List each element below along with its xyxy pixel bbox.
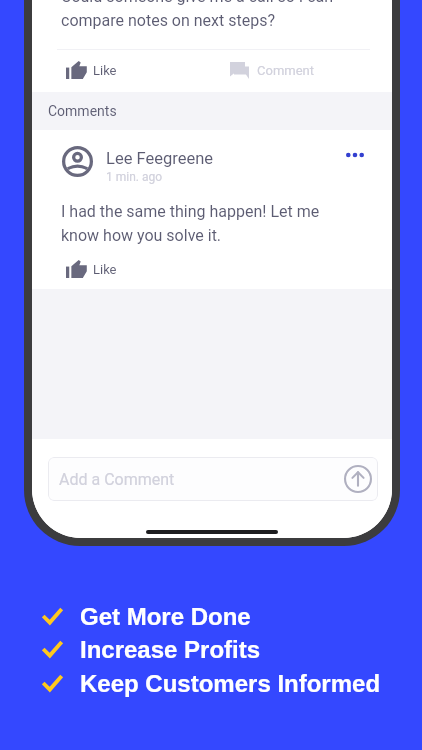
- button[interactable]: Like: [66, 255, 117, 283]
- button[interactable]: Add a Comment: [48, 457, 378, 501]
- staticText: Lee Feegreene: [106, 149, 213, 168]
- staticText: Like: [93, 262, 117, 277]
- button[interactable]: Like: [66, 56, 117, 84]
- staticText: Comment: [257, 63, 315, 78]
- staticText: Comments: [48, 103, 117, 119]
- button[interactable]: More options: [335, 135, 375, 175]
- staticText: 1 min. ago: [106, 170, 163, 184]
- staticText: Keep Customers Informed: [80, 670, 381, 697]
- staticText: Get More Done: [80, 603, 251, 630]
- staticText: Like: [93, 63, 117, 78]
- staticText: Add a Comment: [59, 470, 175, 489]
- staticText: I had the same thing happen! Let me know…: [61, 202, 320, 245]
- staticText: Increase Profits: [80, 636, 261, 663]
- staticText: Could someone give me a call so I can co…: [61, 0, 334, 30]
- button[interactable]: Comment: [230, 56, 315, 84]
